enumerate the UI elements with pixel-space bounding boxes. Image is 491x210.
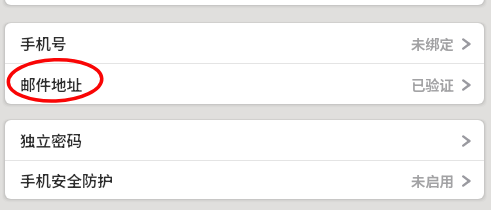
staticText: 独立密码	[20, 129, 83, 151]
button[interactable]: 手机安全防护	[5, 161, 484, 199]
button[interactable]: 手机号	[5, 23, 484, 63]
other: Open	[460, 77, 472, 91]
staticText: 邮件地址	[20, 73, 83, 95]
staticText: 手机号	[20, 32, 67, 54]
other: Open	[460, 36, 472, 50]
button[interactable]	[5, 0, 484, 5]
staticText: 未启用	[411, 170, 454, 191]
other: Open	[460, 133, 472, 147]
button[interactable]: 独立密码	[5, 120, 484, 160]
staticText: 手机安全防护	[20, 169, 114, 191]
other: Open	[460, 173, 472, 187]
button[interactable]: 邮件地址	[5, 64, 484, 104]
staticText: 已验证	[411, 74, 454, 95]
staticText: 未绑定	[411, 33, 454, 54]
